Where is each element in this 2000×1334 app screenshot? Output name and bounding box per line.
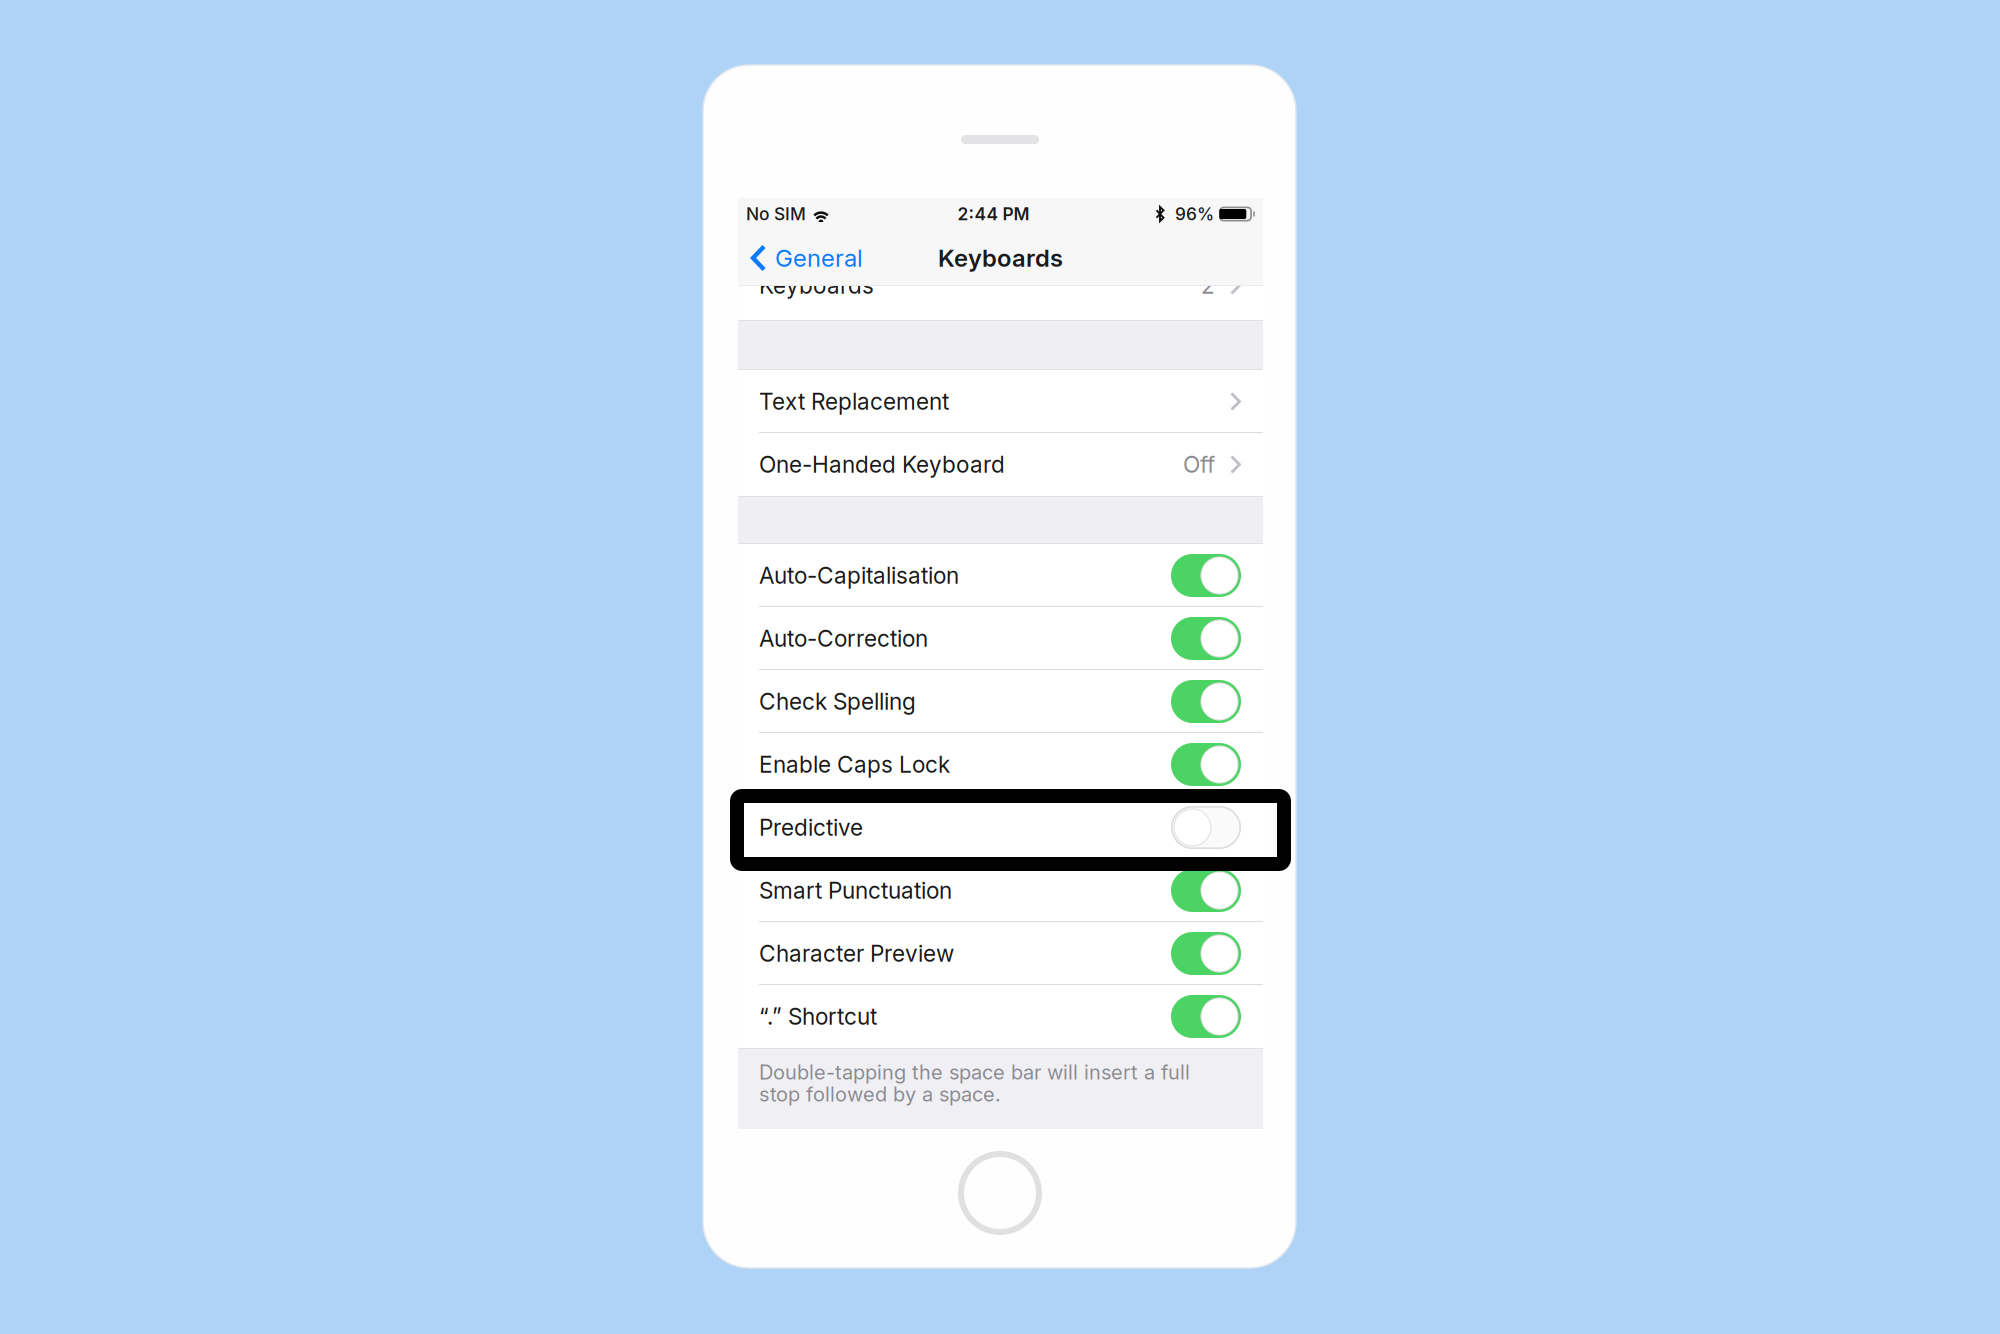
button[interactable]: Auto-Capitalisation <box>738 544 1263 607</box>
staticText: Smart Punctuation <box>759 877 952 904</box>
staticText: No SIM <box>746 203 806 224</box>
staticText: Keyboards <box>938 243 1063 272</box>
staticText: Auto-Correction <box>759 625 928 652</box>
staticText: General <box>775 243 863 272</box>
button[interactable]: One-Handed Keyboard <box>738 433 1263 496</box>
button[interactable]: Character Preview <box>738 922 1263 985</box>
staticText: Text Replacement <box>759 388 949 415</box>
staticText: Enable Caps Lock <box>759 751 950 778</box>
button[interactable]: Check Spelling <box>738 670 1263 733</box>
staticText: Double-tapping the space bar will insert… <box>759 1060 1190 1106</box>
staticText: Predictive <box>759 814 863 841</box>
staticText: Check Spelling <box>759 688 916 715</box>
staticText: Auto-Capitalisation <box>759 562 959 589</box>
button[interactable]: Home <box>958 1151 1042 1235</box>
staticText: 2:44 PM <box>957 203 1029 224</box>
staticText: One-Handed Keyboard <box>759 451 1005 478</box>
staticText: “.” Shortcut <box>759 1003 877 1030</box>
button[interactable]: Predictive <box>738 796 1263 859</box>
staticText: 96% <box>1175 203 1214 224</box>
staticText: 2 <box>1201 272 1215 299</box>
button[interactable]: General <box>738 230 873 286</box>
button[interactable]: Keyboards <box>738 254 1263 317</box>
staticText: Character Preview <box>759 940 954 967</box>
button[interactable]: “.” Shortcut <box>738 985 1263 1048</box>
staticText: Off <box>1183 451 1215 478</box>
staticText: Keyboards <box>759 272 874 299</box>
button[interactable]: Smart Punctuation <box>738 859 1263 922</box>
button[interactable]: Auto-Correction <box>738 607 1263 670</box>
button[interactable]: Text Replacement <box>738 370 1263 433</box>
button[interactable]: Enable Caps Lock <box>738 733 1263 796</box>
